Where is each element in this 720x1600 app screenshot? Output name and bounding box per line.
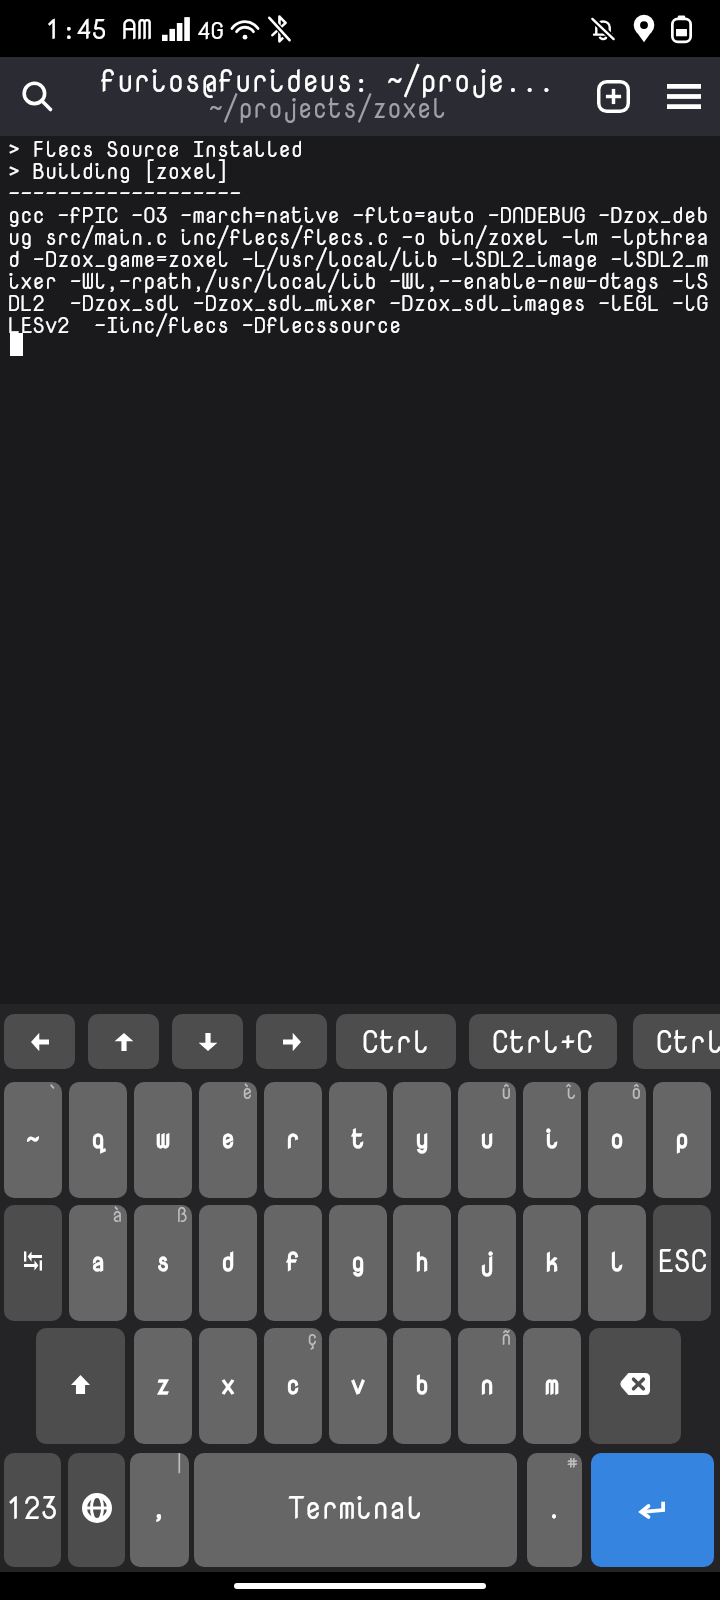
button[interactable]: û <box>458 1082 516 1198</box>
staticText: q <box>91 1121 106 1156</box>
staticText: ~/projects/zoxel <box>208 89 447 126</box>
staticText: 1:45 AM <box>46 10 153 48</box>
staticText: c <box>286 1367 301 1402</box>
staticText: y <box>415 1121 430 1156</box>
staticText: h <box>415 1244 430 1279</box>
button[interactable]: k <box>523 1205 581 1321</box>
staticText: furios@furideus: ~/proje... <box>100 60 555 102</box>
staticText: î <box>566 1082 577 1104</box>
staticText: o <box>610 1121 625 1156</box>
button[interactable]: m <box>523 1328 581 1444</box>
button[interactable]: à <box>69 1205 127 1321</box>
staticText: j <box>480 1244 495 1279</box>
staticText: | <box>174 1453 185 1475</box>
button[interactable]: left <box>4 1014 75 1069</box>
button[interactable]: f <box>264 1205 322 1321</box>
staticText: d <box>221 1244 236 1279</box>
staticText: ß <box>177 1205 188 1227</box>
staticText: i <box>545 1121 560 1156</box>
button[interactable]: b <box>393 1328 451 1444</box>
staticText: s <box>156 1244 171 1279</box>
button[interactable]: q <box>69 1082 127 1198</box>
staticText: Terminal <box>288 1487 423 1529</box>
staticText: ç <box>307 1328 318 1350</box>
button[interactable]: t <box>329 1082 387 1198</box>
staticText: Ctrl+V <box>656 1021 720 1063</box>
staticText: , <box>152 1491 167 1526</box>
button[interactable]: v <box>329 1328 387 1444</box>
staticText: z <box>156 1367 171 1402</box>
button[interactable]: shift <box>36 1328 125 1444</box>
button[interactable]: New tab <box>579 57 648 136</box>
button[interactable]: down <box>172 1014 243 1069</box>
button[interactable]: d <box>199 1205 257 1321</box>
button[interactable]: ß <box>134 1205 192 1321</box>
staticText: k <box>545 1244 560 1279</box>
staticText: v <box>351 1367 366 1402</box>
staticText: t <box>351 1121 366 1156</box>
staticText: Ctrl+C <box>492 1021 594 1063</box>
staticText: a <box>91 1244 106 1279</box>
button[interactable]: w <box>134 1082 192 1198</box>
staticText: # <box>567 1453 578 1475</box>
button[interactable]: 123 <box>4 1453 61 1567</box>
button[interactable]: Menu <box>648 57 720 136</box>
button[interactable]: Ctrl+C <box>469 1014 617 1069</box>
button[interactable]: l <box>588 1205 646 1321</box>
button[interactable]: # <box>527 1453 582 1567</box>
staticText: à <box>112 1205 123 1227</box>
staticText: 4G <box>197 13 224 46</box>
button[interactable]: Ctrl <box>336 1014 456 1069</box>
button[interactable]: right <box>256 1014 327 1069</box>
staticText: ~ <box>26 1121 41 1156</box>
button[interactable]: h <box>393 1205 451 1321</box>
button[interactable]: Ctrl+V <box>633 1014 720 1069</box>
button[interactable]: Search <box>0 57 74 136</box>
staticText: > Flecs Source Installed > Building [zox… <box>8 133 709 340</box>
button[interactable]: j <box>458 1205 516 1321</box>
staticText: Ctrl <box>362 1021 430 1063</box>
button[interactable]: up <box>88 1014 159 1069</box>
staticText: ` <box>47 1082 58 1104</box>
button[interactable]: globe <box>68 1453 125 1567</box>
button[interactable]: g <box>329 1205 387 1321</box>
staticText: b <box>415 1367 430 1402</box>
staticText: w <box>156 1121 171 1156</box>
button[interactable]: bksp <box>589 1328 681 1444</box>
staticText: è <box>242 1082 253 1104</box>
button[interactable]: ç <box>264 1328 322 1444</box>
staticText: u <box>480 1121 495 1156</box>
button[interactable]: î <box>523 1082 581 1198</box>
staticText: p <box>675 1121 690 1156</box>
staticText: l <box>610 1244 625 1279</box>
staticText: n <box>480 1367 495 1402</box>
button[interactable]: | <box>130 1453 189 1567</box>
button[interactable]: tab <box>4 1205 62 1321</box>
button[interactable]: z <box>134 1328 192 1444</box>
staticText: x <box>221 1367 236 1402</box>
staticText: û <box>501 1082 512 1104</box>
button[interactable]: ô <box>588 1082 646 1198</box>
button[interactable]: x <box>199 1328 257 1444</box>
staticText: . <box>547 1491 562 1526</box>
button[interactable]: è <box>199 1082 257 1198</box>
button[interactable]: furios@furideus: ~/proje... <box>72 57 582 136</box>
staticText: ESC <box>657 1240 708 1282</box>
staticText: f <box>286 1244 301 1279</box>
button[interactable]: p <box>653 1082 711 1198</box>
button[interactable]: Terminal <box>194 1453 517 1567</box>
button[interactable]: ` <box>4 1082 62 1198</box>
staticText: g <box>351 1244 366 1279</box>
button[interactable]: r <box>264 1082 322 1198</box>
staticText: 123 <box>7 1487 58 1529</box>
button[interactable]: enter <box>591 1453 714 1567</box>
button[interactable]: y <box>393 1082 451 1198</box>
staticText: e <box>221 1121 236 1156</box>
button[interactable]: ESC <box>653 1205 711 1321</box>
staticText: m <box>545 1367 560 1402</box>
staticText: ô <box>631 1082 642 1104</box>
staticText: ñ <box>501 1328 512 1350</box>
staticText: r <box>286 1121 301 1156</box>
button[interactable]: ñ <box>458 1328 516 1444</box>
